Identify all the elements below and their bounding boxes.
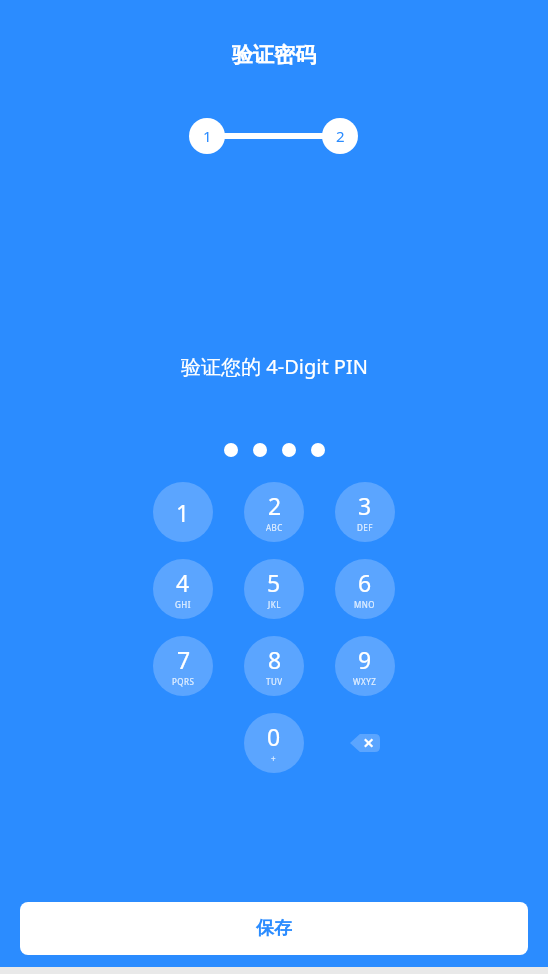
staticText: 验证密码 [232, 42, 316, 68]
button[interactable]: 3 [335, 482, 395, 542]
staticText: GHI [175, 599, 191, 610]
staticText: WXYZ [353, 676, 377, 687]
button[interactable]: 4 [153, 559, 213, 619]
button[interactable]: 保存 [20, 902, 528, 955]
button[interactable]: 8 [244, 636, 304, 696]
staticText: 5 [267, 567, 281, 598]
staticText: 保存 [256, 917, 292, 940]
button[interactable]: 6 [335, 559, 395, 619]
staticText: 4 [176, 567, 190, 598]
button[interactable]: 1 [153, 482, 213, 542]
button[interactable]: 0 [244, 713, 304, 773]
staticText: MNO [354, 599, 376, 610]
button[interactable]: Delete [335, 713, 395, 773]
staticText: 1 [203, 126, 212, 146]
staticText: 9 [358, 644, 372, 675]
staticText: 1 [176, 497, 190, 528]
staticText: PQRS [172, 676, 195, 687]
button[interactable]: 9 [335, 636, 395, 696]
staticText: ABC [266, 522, 283, 533]
button[interactable]: 2 [244, 482, 304, 542]
staticText: DEF [357, 522, 373, 533]
staticText: 8 [268, 644, 282, 675]
staticText: 0 [267, 721, 281, 752]
staticText: + [271, 753, 277, 764]
button[interactable]: 7 [153, 636, 213, 696]
staticText: 2 [268, 490, 282, 521]
button[interactable]: 5 [244, 559, 304, 619]
staticText: 6 [358, 567, 372, 598]
staticText: 验证您的 4-Digit PIN [181, 353, 368, 380]
staticText: TUV [266, 676, 283, 687]
staticText: 2 [336, 126, 345, 146]
staticText: 3 [358, 490, 372, 521]
staticText: JKL [268, 599, 281, 610]
staticText: 7 [177, 644, 191, 675]
